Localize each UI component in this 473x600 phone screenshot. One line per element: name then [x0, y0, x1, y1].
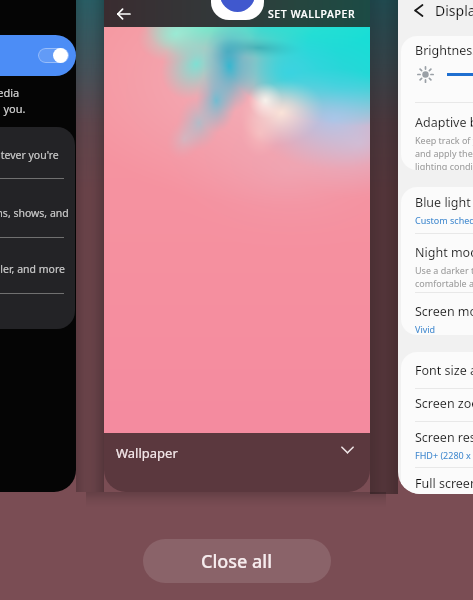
- staticText: Full screen: [415, 475, 473, 492]
- staticText: SET WALLPAPER: [268, 7, 356, 21]
- staticText: Display: [435, 1, 473, 20]
- staticText: Screen zoo: [415, 395, 473, 412]
- staticText: Wallpaper: [116, 444, 178, 462]
- staticText: Screen mo: [415, 303, 473, 320]
- staticText: comfortable at: [415, 277, 473, 289]
- button[interactable]: Close all: [143, 539, 331, 583]
- button[interactable]: Back: [398, 0, 473, 494]
- staticText: Vivid: [415, 323, 436, 335]
- staticText: Keep track of y: [415, 134, 473, 146]
- button[interactable]: Expand: [341, 446, 354, 454]
- staticText: Adaptive b: [415, 114, 473, 131]
- staticText: Night mod: [415, 244, 473, 261]
- button[interactable]: Back: [117, 8, 130, 20]
- staticText: FHD+ (2280 x 1: [415, 449, 473, 461]
- staticText: and apply them: [415, 147, 473, 159]
- staticText: handler, and more: [0, 262, 65, 276]
- staticText: Font size a: [415, 362, 473, 379]
- staticText: Custom schedu: [415, 214, 473, 226]
- staticText: Brightness: [415, 42, 473, 59]
- staticText: Blue light: [415, 194, 471, 211]
- staticText: Screen rese: [415, 429, 473, 446]
- staticText: lighting condit: [415, 160, 473, 170]
- staticText: whatever you're: [0, 148, 59, 162]
- staticText: nd you.: [0, 101, 26, 116]
- staticText: films, shows, and: [0, 206, 69, 220]
- staticText: media: [0, 85, 20, 100]
- staticText: Use a darker th: [415, 264, 473, 276]
- button[interactable]: media: [0, 0, 76, 492]
- staticText: Close all: [201, 549, 273, 574]
- button[interactable]: Back: [414, 4, 423, 17]
- button[interactable]: Back: [104, 0, 370, 492]
